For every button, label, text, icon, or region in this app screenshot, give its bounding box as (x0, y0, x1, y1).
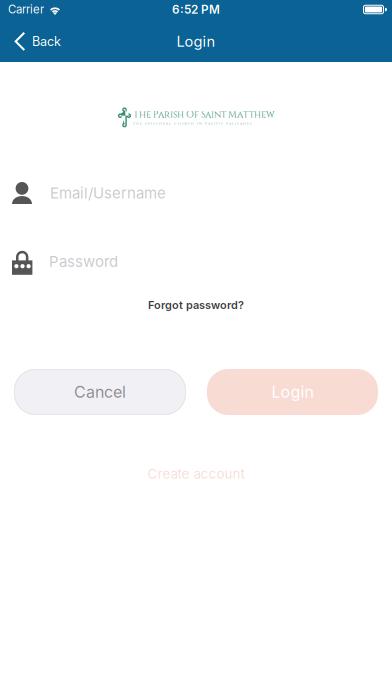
button[interactable]: Back (0, 19, 73, 64)
staticText: Login (176, 33, 215, 50)
staticText: T h e E p i s c o p a l C h u r c h i n … (133, 121, 252, 126)
button[interactable]: Forgot password? (0, 298, 392, 312)
staticText: Password (49, 252, 118, 271)
staticText: Email/Username (50, 184, 166, 202)
staticText: 6:52 PM (172, 2, 220, 17)
button[interactable]: Create account (0, 467, 392, 481)
staticText: The Parish Of Saint Matthew (133, 108, 274, 121)
staticText: Login (271, 382, 313, 402)
button[interactable]: Password (0, 248, 392, 275)
button[interactable]: Email/Username (0, 182, 392, 204)
staticText: Create account (147, 466, 244, 482)
staticText: Forgot password? (148, 298, 244, 312)
staticText: Back (32, 34, 61, 49)
staticText: Carrier (8, 3, 44, 16)
staticText: Cancel (74, 382, 126, 402)
button[interactable]: Login (207, 369, 378, 415)
button[interactable]: Cancel (14, 369, 186, 415)
